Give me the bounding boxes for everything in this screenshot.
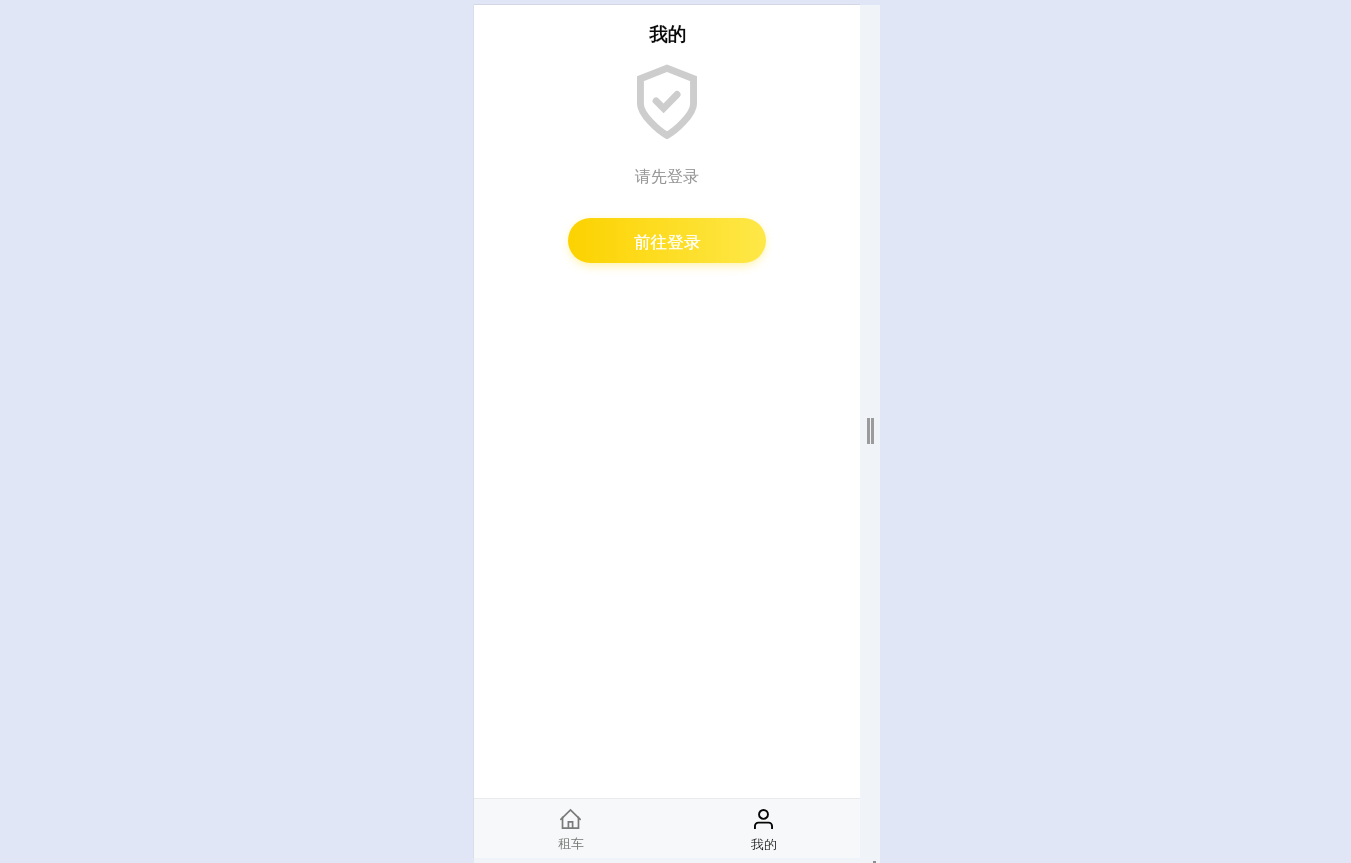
staticText: 前往登录	[634, 232, 701, 253]
button[interactable]: 租车	[474, 799, 667, 858]
button[interactable]: 我的	[667, 799, 860, 858]
other: 我的	[754, 809, 773, 830]
staticText: 我的	[649, 23, 686, 46]
other: 租车	[560, 809, 581, 829]
button[interactable]: 前往登录	[568, 218, 766, 263]
staticText: 请先登录	[635, 167, 699, 187]
staticText: 我的	[751, 836, 777, 852]
staticText: 租车	[558, 835, 584, 851]
